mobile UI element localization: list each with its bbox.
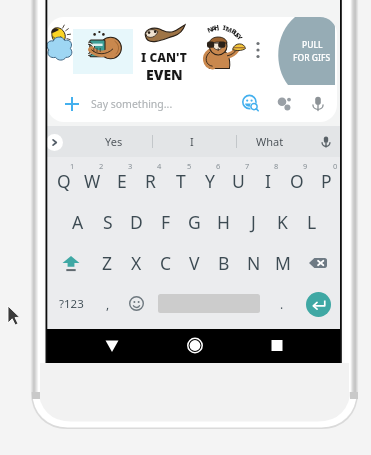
staticText: PULL — [302, 39, 323, 51]
staticText: S — [103, 210, 113, 234]
button[interactable]: Backspace — [297, 242, 338, 283]
button[interactable]: I — [166, 126, 218, 157]
button[interactable]: F — [151, 201, 180, 242]
button[interactable]: G — [180, 201, 209, 242]
button[interactable]: A — [63, 201, 92, 242]
staticText: B — [230, 27, 239, 37]
staticText: 5 — [187, 161, 192, 171]
button[interactable]: What — [244, 126, 296, 157]
button[interactable]: X — [122, 242, 151, 283]
staticText: I — [265, 169, 271, 193]
button[interactable]: C — [151, 242, 180, 283]
button[interactable]: . — [268, 283, 296, 324]
staticText: Q — [57, 169, 71, 193]
staticText: 2 — [99, 161, 104, 171]
button[interactable]: P — [312, 160, 341, 201]
staticText: I CAN'T — [141, 49, 187, 65]
staticText: L — [307, 210, 317, 234]
staticText: P — [321, 169, 332, 193]
button[interactable]: Expand suggestions — [46, 134, 63, 151]
button[interactable]: Yes — [88, 126, 140, 157]
staticText: EVEN — [146, 65, 183, 84]
button[interactable]: S — [93, 201, 122, 242]
button[interactable]: T — [166, 160, 195, 201]
button[interactable]: , — [93, 283, 123, 324]
staticText: D — [130, 210, 143, 234]
button[interactable]: V — [180, 242, 209, 283]
button[interactable]: PULL — [277, 17, 335, 85]
staticText: Y — [205, 169, 215, 193]
button[interactable]: M — [268, 242, 297, 283]
button[interactable]: I — [253, 160, 282, 201]
button[interactable]: Voice typing — [314, 126, 338, 157]
staticText: Yes — [105, 134, 123, 149]
staticText: 7 — [245, 161, 250, 171]
staticText: H — [217, 210, 230, 234]
staticText: J — [251, 210, 256, 234]
staticText: X — [131, 251, 142, 275]
staticText: O — [290, 169, 304, 193]
staticText: M — [224, 24, 234, 35]
staticText: E — [117, 169, 127, 193]
staticText: A — [72, 210, 84, 234]
staticText: U — [232, 169, 245, 193]
staticText: , — [217, 23, 220, 32]
staticText: 1 — [70, 161, 75, 171]
staticText: 4 — [157, 161, 162, 171]
staticText: N — [247, 251, 261, 275]
button[interactable]: Voice input — [303, 85, 333, 122]
button[interactable]: J — [239, 201, 268, 242]
staticText: H — [213, 22, 220, 32]
staticText: M — [275, 251, 291, 275]
button[interactable]: Add attachment — [55, 85, 89, 122]
button[interactable]: E — [107, 160, 136, 201]
button[interactable]: Q — [49, 160, 78, 201]
staticText: Y — [235, 33, 245, 42]
staticText: N — [206, 24, 215, 35]
staticText: F — [161, 210, 171, 234]
button[interactable]: Enter — [306, 292, 331, 317]
button[interactable]: R — [136, 160, 165, 201]
staticText: I — [222, 23, 227, 32]
button[interactable]: U — [224, 160, 253, 201]
button[interactable]: B — [209, 242, 238, 283]
staticText: I — [190, 134, 194, 149]
staticText: K — [277, 210, 288, 234]
button[interactable]: Sticker search — [236, 85, 266, 122]
button[interactable]: K — [268, 201, 297, 242]
staticText: ?123 — [59, 296, 84, 312]
button[interactable]: H — [209, 201, 238, 242]
staticText: A — [210, 23, 217, 33]
staticText: , — [106, 296, 110, 312]
button[interactable]: W — [78, 160, 107, 201]
button[interactable]: Z — [93, 242, 122, 283]
button[interactable]: Y — [195, 160, 224, 201]
staticText: FOR GIFS — [293, 52, 331, 64]
staticText: 6 — [216, 161, 221, 171]
staticText: R — [145, 169, 156, 193]
staticText: W — [84, 169, 101, 193]
staticText: V — [189, 251, 200, 275]
staticText: 3 — [128, 161, 133, 171]
staticText: 0 — [333, 161, 338, 171]
button[interactable]: L — [297, 201, 326, 242]
staticText: B — [218, 251, 230, 275]
staticText: 9 — [303, 161, 308, 171]
staticText: C — [160, 251, 172, 275]
staticText: 8 — [274, 161, 279, 171]
button[interactable]: D — [122, 201, 151, 242]
button[interactable]: More options — [247, 39, 269, 61]
button[interactable]: Assistant — [269, 85, 299, 122]
button[interactable]: N — [239, 242, 268, 283]
button[interactable]: O — [282, 160, 311, 201]
button[interactable]: ?123 — [52, 283, 91, 324]
staticText: T — [176, 169, 186, 193]
button[interactable]: Shift — [49, 242, 92, 283]
staticText: U — [231, 29, 241, 39]
button[interactable]: Emoji — [121, 283, 151, 324]
staticText: . — [280, 296, 284, 312]
staticText: Z — [102, 251, 113, 275]
staticText: S — [233, 31, 242, 40]
staticText: G — [188, 210, 201, 234]
